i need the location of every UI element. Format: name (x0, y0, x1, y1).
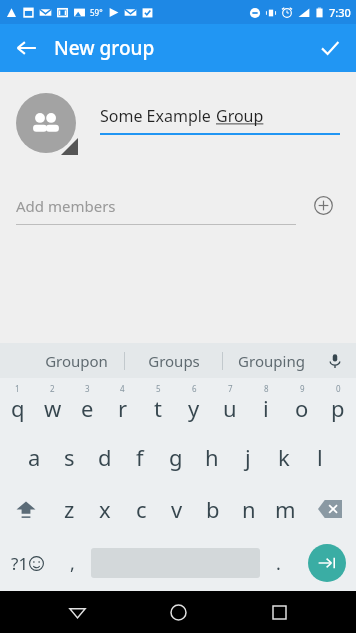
button[interactable]: Groups (125, 343, 222, 378)
staticText: Some Example (100, 105, 216, 127)
button[interactable]: Done (310, 28, 350, 68)
staticText: 7 (228, 383, 233, 394)
staticText: 6 (192, 383, 197, 394)
staticText: 4 (120, 383, 125, 394)
other: Add member (306, 193, 340, 218)
button[interactable]: Grouping (223, 343, 320, 378)
button[interactable]: Next (308, 544, 346, 582)
staticText: x (99, 494, 111, 524)
button[interactable]: a (17, 431, 52, 483)
staticText: h (205, 442, 219, 472)
button[interactable]: k (266, 431, 302, 483)
staticText: 0 (336, 383, 341, 394)
staticText: 1 (15, 383, 20, 394)
staticText: 8 (264, 383, 269, 394)
button[interactable]: Back (6, 28, 46, 68)
staticText: m (275, 494, 296, 524)
staticText: k (278, 442, 290, 472)
staticText: s (64, 442, 75, 472)
button[interactable]: x (87, 483, 123, 535)
staticText: j (245, 442, 251, 472)
button[interactable]: Back (53, 591, 101, 633)
button[interactable]: 9 (284, 378, 320, 431)
button[interactable]: f (122, 431, 158, 483)
staticText: b (206, 494, 220, 524)
staticText: d (98, 442, 112, 472)
button[interactable]: l (302, 431, 338, 483)
button[interactable]: c (123, 483, 159, 535)
staticText: l (317, 442, 323, 472)
staticText: 5 (156, 383, 161, 394)
staticText: 7:30 (329, 5, 351, 20)
button[interactable]: 7 (212, 378, 248, 431)
button[interactable]: . (260, 535, 297, 591)
button[interactable]: Symbols and emoji (0, 535, 54, 591)
button[interactable]: Shift (0, 483, 52, 535)
staticText: Groupon (45, 351, 108, 371)
button[interactable]: v (159, 483, 195, 535)
button[interactable]: s (52, 431, 87, 483)
button[interactable]: Voice input (320, 343, 350, 378)
staticText: Groups (148, 351, 200, 371)
staticText: , (70, 551, 75, 576)
button[interactable]: Groupon (28, 343, 124, 378)
staticText: r (118, 393, 128, 423)
staticText: z (64, 494, 75, 524)
button[interactable]: , (54, 535, 91, 591)
button[interactable]: b (195, 483, 231, 535)
button[interactable]: 2 (35, 378, 70, 431)
staticText: g (169, 442, 183, 472)
staticText: Grouping (238, 351, 305, 371)
button[interactable]: Add members (16, 193, 340, 227)
staticText: ?1 (11, 552, 29, 575)
staticText: u (223, 393, 237, 423)
button[interactable]: Some Example (100, 105, 340, 135)
button[interactable]: d (87, 431, 122, 483)
staticText: a (28, 442, 41, 472)
staticText: 3 (85, 383, 90, 394)
button[interactable]: 3 (70, 378, 105, 431)
button[interactable]: Group photo (16, 93, 78, 155)
staticText: Group (216, 105, 264, 127)
button[interactable]: z (52, 483, 87, 535)
staticText: n (242, 494, 256, 524)
staticText: w (44, 393, 62, 423)
button[interactable]: 5 (140, 378, 176, 431)
button[interactable]: 0 (320, 378, 356, 431)
staticText: Add members (16, 196, 116, 216)
button[interactable]: Recents (255, 591, 303, 633)
button[interactable]: 8 (248, 378, 284, 431)
button[interactable]: h (194, 431, 230, 483)
staticText: c (136, 494, 147, 524)
button[interactable]: m (267, 483, 303, 535)
staticText: y (188, 393, 200, 423)
staticText: . (276, 551, 281, 576)
button[interactable]: j (230, 431, 266, 483)
staticText: v (171, 494, 183, 524)
button[interactable]: Home (154, 591, 202, 633)
button[interactable]: 6 (176, 378, 212, 431)
button[interactable]: Backspace (303, 483, 356, 535)
button[interactable]: 1 (0, 378, 35, 431)
button[interactable]: g (158, 431, 194, 483)
button[interactable]: n (231, 483, 267, 535)
staticText: o (295, 393, 309, 423)
staticText: q (11, 393, 25, 423)
staticText: f (136, 442, 144, 472)
staticText: New group (54, 35, 155, 61)
staticText: e (81, 393, 94, 423)
staticText: 59° (90, 7, 103, 18)
staticText: 9 (300, 383, 305, 394)
staticText: t (154, 393, 162, 423)
button[interactable]: 4 (105, 378, 140, 431)
staticText: i (263, 393, 269, 423)
staticText: p (331, 393, 345, 423)
staticText: 2 (50, 383, 55, 394)
